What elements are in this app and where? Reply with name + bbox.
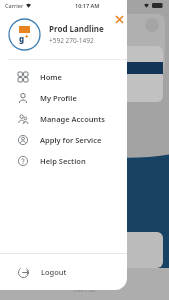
staticText: Logout <box>41 267 67 277</box>
button[interactable]: My Profile <box>0 87 127 108</box>
staticText: Home <box>40 72 62 82</box>
button[interactable]: Home <box>0 66 127 87</box>
staticText: Manage Accounts <box>40 114 106 124</box>
staticText: gtt <box>71 241 92 259</box>
staticText: Live Chat <box>74 287 96 294</box>
button[interactable]: Apply for Service <box>0 129 127 150</box>
staticText: Carrier <box>5 2 24 9</box>
staticText: Apply for Service <box>40 135 102 145</box>
staticText: My Profile <box>40 93 77 103</box>
staticText: 24-2022 <box>20 78 43 86</box>
staticText: Help Section <box>40 156 86 166</box>
button[interactable]: Logout <box>0 254 127 290</box>
staticText: + <box>25 33 29 41</box>
button[interactable]: Help Section <box>0 150 127 171</box>
button[interactable]: Manage Accounts <box>0 108 127 129</box>
staticText: g <box>19 33 25 44</box>
staticText: Prod Landline <box>49 23 104 34</box>
button[interactable]: g <box>0 14 127 54</box>
staticText: 10:17 AM <box>75 2 100 9</box>
button[interactable]: Close menu <box>111 11 127 27</box>
staticText: + <box>92 247 98 259</box>
staticText: +592 270-1492 <box>49 36 94 45</box>
